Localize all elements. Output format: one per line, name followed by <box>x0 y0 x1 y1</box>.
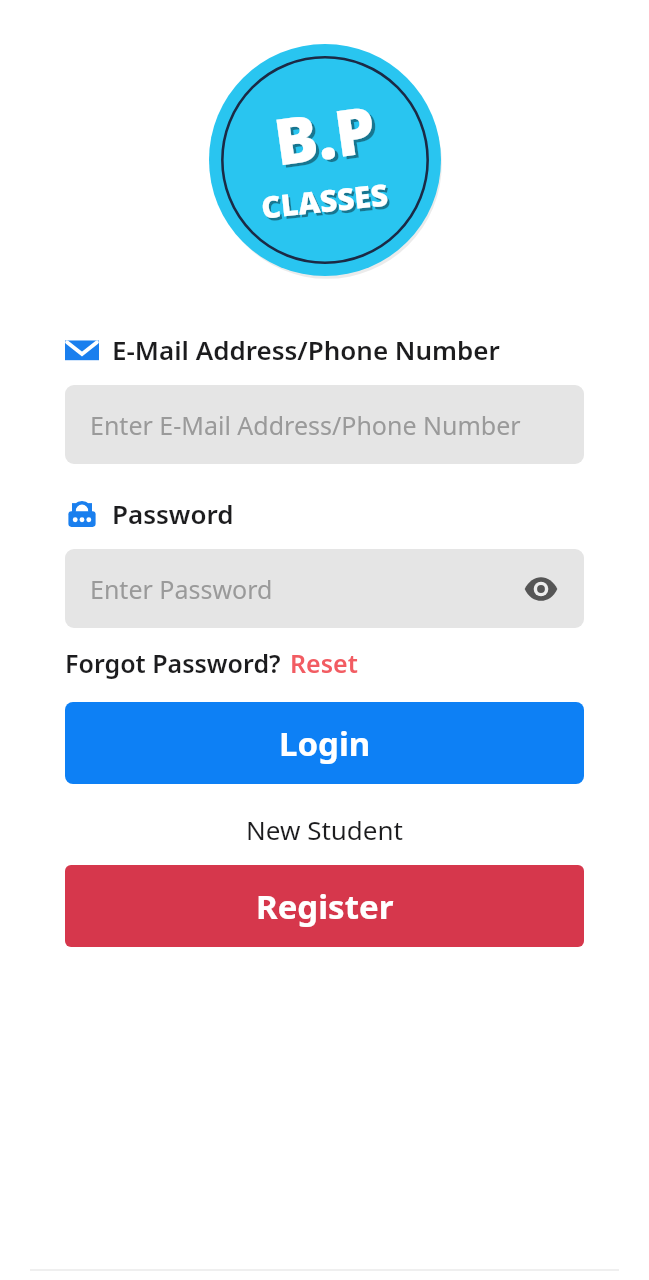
staticText: Password <box>112 496 234 531</box>
staticText: CLASSES <box>261 176 393 230</box>
staticText: B.P <box>268 84 381 185</box>
button[interactable]: Enter E-Mail Address/Phone Number <box>65 385 584 464</box>
staticText: Login <box>279 721 371 766</box>
staticText: B.P <box>272 87 385 187</box>
button[interactable]: Register <box>65 865 584 947</box>
button[interactable]: Enter Password <box>65 549 584 628</box>
staticText: E-Mail Address/Phone Number <box>112 332 500 367</box>
button[interactable]: Reset <box>290 646 358 680</box>
staticText: CLASSES <box>259 173 391 228</box>
other: Email <box>65 333 99 367</box>
staticText: Register <box>256 884 394 929</box>
staticText: Enter Password <box>90 572 273 606</box>
other: Password <box>65 497 99 531</box>
staticText: New Student <box>0 812 649 847</box>
button[interactable]: Login <box>65 702 584 784</box>
staticText: Reset <box>290 646 358 680</box>
staticText: Forgot Password? <box>65 646 281 680</box>
staticText: Enter E-Mail Address/Phone Number <box>90 408 521 442</box>
button[interactable]: Show password <box>520 568 562 610</box>
